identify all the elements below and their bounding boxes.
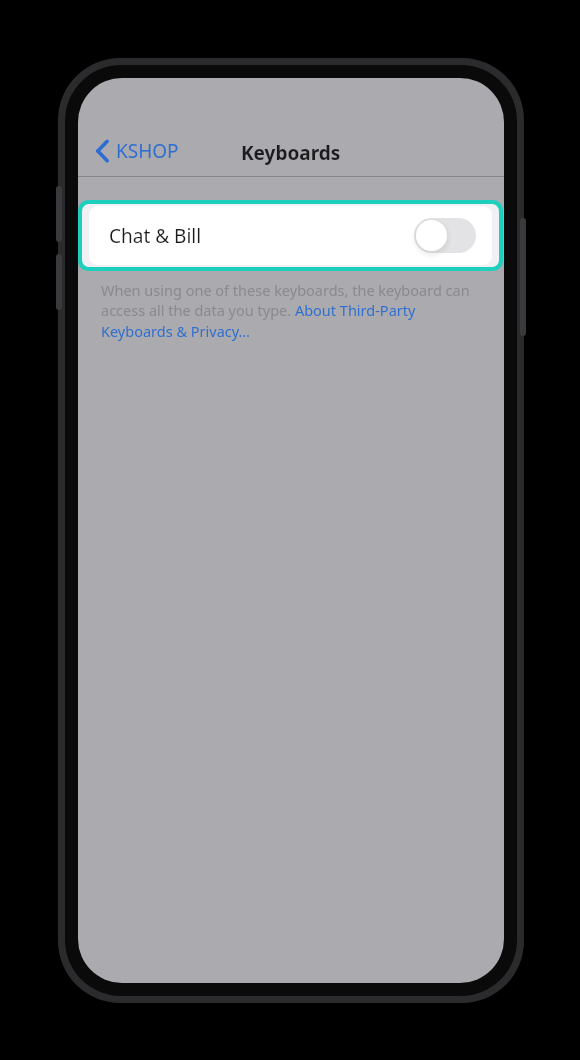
button[interactable]: When using one of these keyboards, the k…	[101, 280, 486, 342]
button[interactable]: Back	[90, 134, 185, 168]
button[interactable]: Chat & Bill keyboard toggle	[414, 218, 476, 253]
staticText: When using one of these keyboards, the k…	[101, 280, 486, 342]
button[interactable]: Chat & Bill	[89, 206, 492, 265]
staticText: Keyboards	[241, 140, 341, 166]
staticText: KSHOP	[116, 138, 179, 164]
other: Back	[96, 140, 109, 162]
staticText: Chat & Bill	[109, 223, 202, 249]
